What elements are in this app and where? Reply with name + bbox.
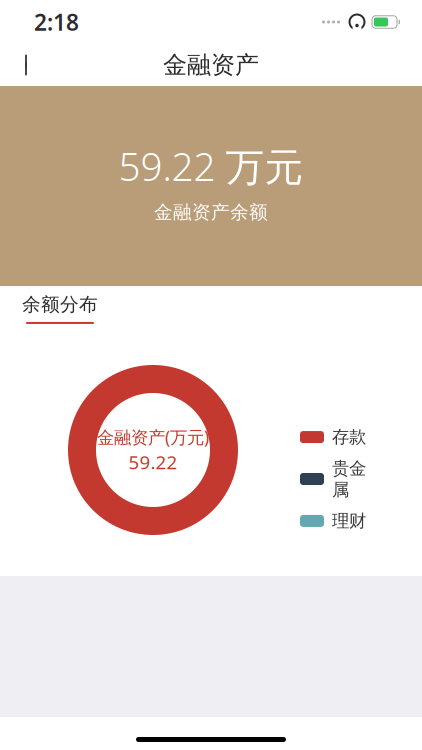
button[interactable]: 返回 — [5, 44, 51, 86]
staticText: 金融资产(万元) — [97, 426, 209, 449]
staticText: 贵金属 — [332, 458, 366, 500]
staticText: 59.22 万元 — [118, 140, 303, 192]
staticText: 金融资产 — [163, 50, 259, 80]
staticText: 存款 — [332, 426, 366, 448]
staticText: 2:18 — [34, 7, 79, 37]
button[interactable]: 余额分布 — [17, 283, 103, 329]
staticText: 59.22 — [128, 450, 177, 474]
staticText: 金融资产余额 — [154, 201, 268, 224]
staticText: 理财 — [332, 510, 366, 532]
staticText: 余额分布 — [22, 293, 98, 316]
